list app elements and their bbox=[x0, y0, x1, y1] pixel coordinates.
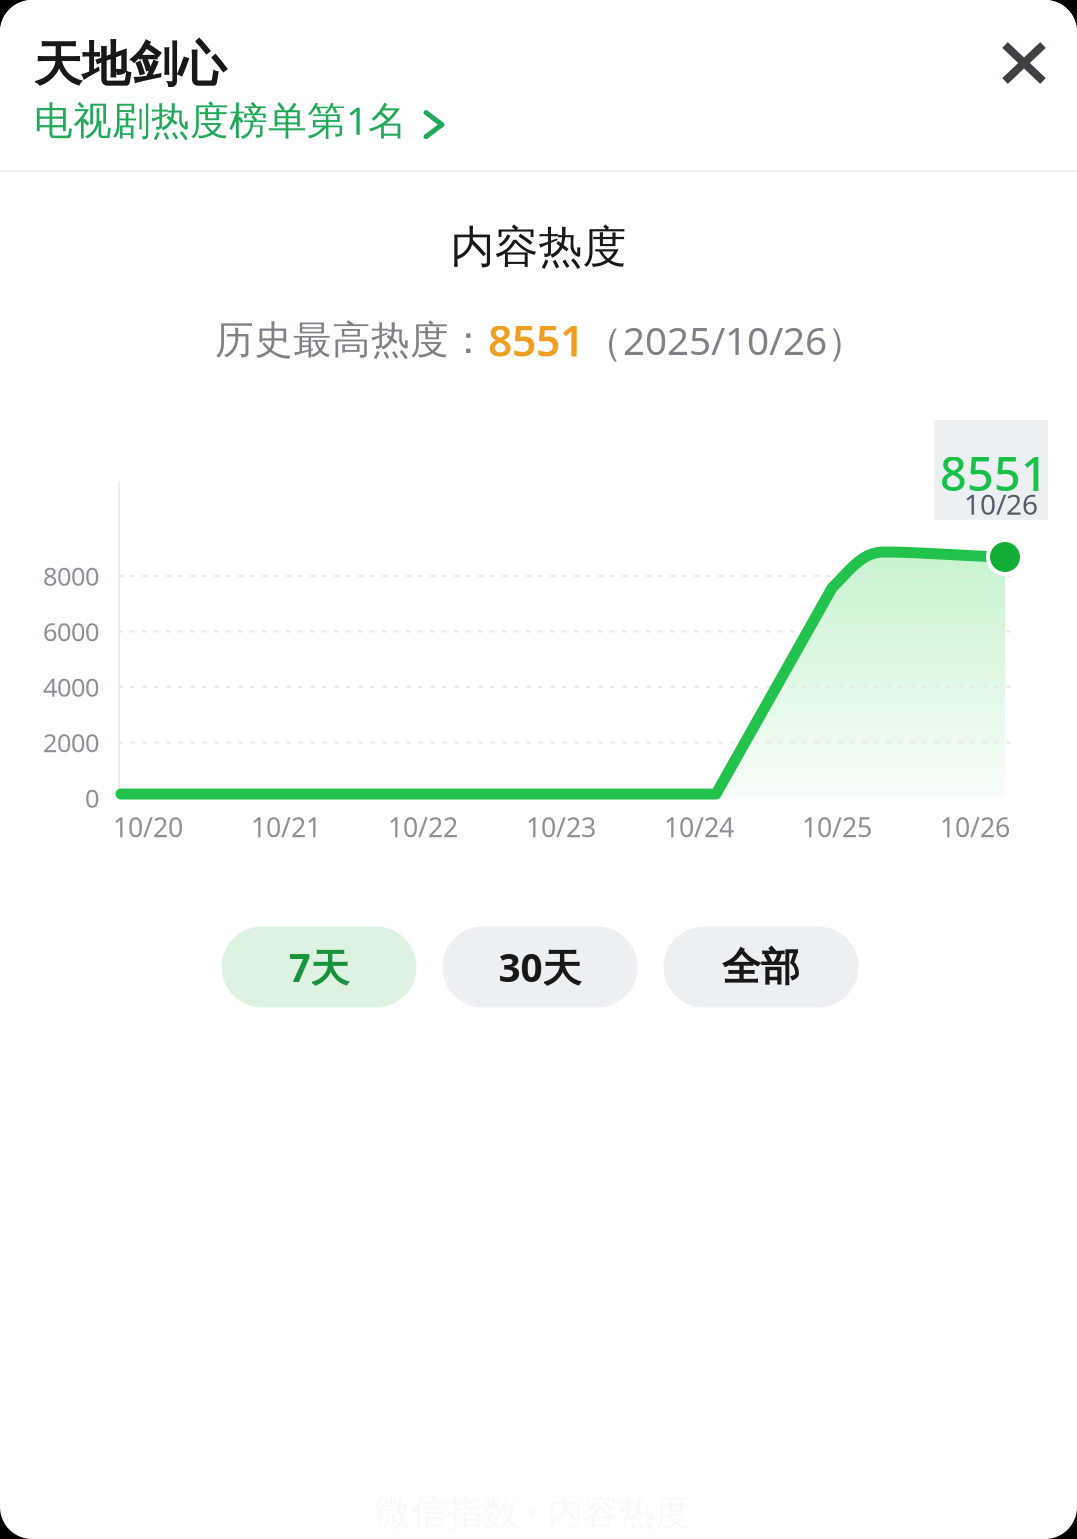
staticText: 历史最高热度： bbox=[215, 316, 488, 364]
staticText: 10/20 bbox=[113, 809, 183, 845]
staticText: 10/25 bbox=[802, 809, 872, 845]
button[interactable]: 30天 bbox=[442, 926, 637, 1007]
staticText: 0 bbox=[85, 781, 99, 815]
staticText: 6000 bbox=[43, 615, 99, 648]
button[interactable]: 7天 bbox=[221, 926, 416, 1007]
button[interactable]: Close bbox=[979, 18, 1069, 108]
staticText: 8551 bbox=[488, 312, 584, 368]
staticText: 全部 bbox=[722, 943, 800, 991]
staticText: 内容热度 bbox=[450, 220, 626, 274]
staticText: 天地剑心 bbox=[34, 35, 226, 94]
staticText: 4000 bbox=[43, 670, 99, 704]
staticText: 8551 bbox=[940, 442, 1048, 504]
staticText: 8000 bbox=[43, 559, 99, 593]
staticText: 10/22 bbox=[388, 809, 458, 845]
staticText: 7天 bbox=[288, 941, 349, 993]
staticText: 10/26 bbox=[964, 485, 1038, 523]
staticText: 30天 bbox=[498, 941, 581, 993]
staticText: 10/24 bbox=[664, 809, 734, 845]
button[interactable]: 全部 bbox=[663, 926, 858, 1007]
staticText: （2025/10/26） bbox=[584, 314, 866, 366]
staticText: 2000 bbox=[43, 726, 99, 759]
staticText: 电视剧热度榜单第1名 bbox=[34, 94, 407, 145]
button[interactable]: 电视剧热度榜单第1名 bbox=[34, 94, 443, 145]
staticText: 10/23 bbox=[526, 809, 596, 845]
staticText: 10/26 bbox=[940, 809, 1010, 845]
staticText: 10/21 bbox=[251, 809, 321, 845]
